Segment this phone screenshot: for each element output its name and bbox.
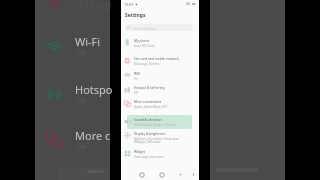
staticText: Wallpaper, Dark mode	[134, 140, 161, 143]
staticText: WiFi	[134, 72, 141, 76]
staticText: On	[134, 77, 138, 80]
staticText: Do Not Disturb, Ringtone, Vibration	[134, 123, 177, 126]
button[interactable]: More c	[35, 129, 110, 171]
button[interactable]: Recents	[138, 171, 145, 178]
button[interactable]: Home	[158, 171, 165, 178]
staticText: Data usage, Dual sim	[134, 62, 160, 65]
staticText: Widget	[134, 150, 145, 154]
staticText: Display & brightness	[134, 132, 166, 136]
staticText: Off	[77, 97, 86, 105]
staticText: 10:09	[124, 2, 134, 7]
staticText: Off	[77, 49, 86, 57]
staticText: Search settings	[133, 26, 157, 30]
button[interactable]: More connections	[121, 96, 199, 110]
button[interactable]: Hotspo	[35, 83, 110, 125]
button[interactable]: Widget	[121, 146, 199, 160]
staticText: More c	[75, 128, 111, 143]
staticText: Settings	[125, 12, 146, 19]
button[interactable]: WiFi	[121, 68, 199, 82]
button[interactable]: My phone	[121, 35, 199, 49]
staticText: SIM card	[70, 0, 112, 12]
staticText: More connections	[134, 100, 162, 104]
staticText: Sound & vibration	[134, 118, 162, 122]
staticText: Wi-Fi	[75, 34, 101, 49]
button[interactable]: Back	[177, 171, 184, 178]
button[interactable]: Sound & vibration	[121, 114, 199, 128]
button[interactable]: Sim card and mobile network	[121, 53, 199, 67]
staticText: My phone	[134, 39, 150, 43]
button[interactable]: Wi-Fi	[35, 35, 110, 77]
staticText: Off	[77, 143, 86, 151]
button[interactable]: Search settings	[125, 24, 193, 31]
staticText: Sim card and mobile network	[134, 57, 179, 61]
staticText: Hotspot & tethering	[134, 86, 165, 90]
staticText: Hotspo	[75, 82, 113, 97]
button[interactable]: Menu	[190, 171, 197, 178]
staticText: System, Android Beam, NFC	[134, 105, 168, 108]
staticText: Brightness, Eye comfort, Screen saver	[134, 137, 180, 140]
button[interactable]: Hotspot & tethering	[121, 82, 199, 96]
staticText: Home page, Lock screen	[134, 155, 164, 158]
staticText: 4G	[186, 2, 191, 6]
button[interactable]: Display & brightness	[121, 128, 199, 142]
staticText: about HTC Desire	[134, 44, 155, 47]
